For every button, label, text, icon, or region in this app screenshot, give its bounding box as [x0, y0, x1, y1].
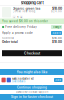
staticText: Loose leaf 100g — [13, 10, 36, 13]
staticText: You might also like — [16, 70, 47, 74]
staticText: You saved $6.00 on this order — [2, 20, 48, 23]
staticText: See details — [12, 80, 25, 83]
staticText: $18.00 — [52, 7, 62, 10]
staticText: Apply a promo code — [2, 31, 33, 35]
staticText: Order total — [2, 40, 18, 44]
staticText: Organic green tea — [13, 7, 41, 10]
staticText: Continue shopping — [17, 86, 47, 89]
staticText: Matcha starter kit — [12, 77, 34, 80]
staticText: Checkout — [24, 51, 40, 55]
staticText: - — [14, 15, 15, 19]
button[interactable]: Add — [54, 78, 62, 82]
staticText: Add — [55, 78, 61, 82]
staticText: Subtotal — [2, 36, 14, 40]
staticText: Sign in for faster checkout — [11, 95, 53, 99]
staticText: Shopping cart — [20, 0, 43, 5]
staticText: $24.00 — [51, 10, 62, 13]
staticText: Free delivery Friday — [5, 25, 37, 29]
staticText: $18.00 — [52, 40, 62, 44]
staticText: $18.00 — [52, 36, 62, 40]
staticText: + — [20, 15, 22, 19]
button[interactable]: Sign in for faster checkout — [0, 94, 64, 100]
staticText: Questions? Contact support — [15, 90, 48, 94]
button[interactable]: Continue shopping — [0, 85, 64, 90]
button[interactable]: Apply — [51, 31, 62, 35]
staticText: Apply — [52, 31, 60, 35]
staticText: 1 — [17, 15, 18, 19]
button[interactable]: Checkout — [2, 50, 62, 56]
button[interactable]: Change — [51, 25, 62, 29]
staticText: Change — [52, 25, 60, 29]
